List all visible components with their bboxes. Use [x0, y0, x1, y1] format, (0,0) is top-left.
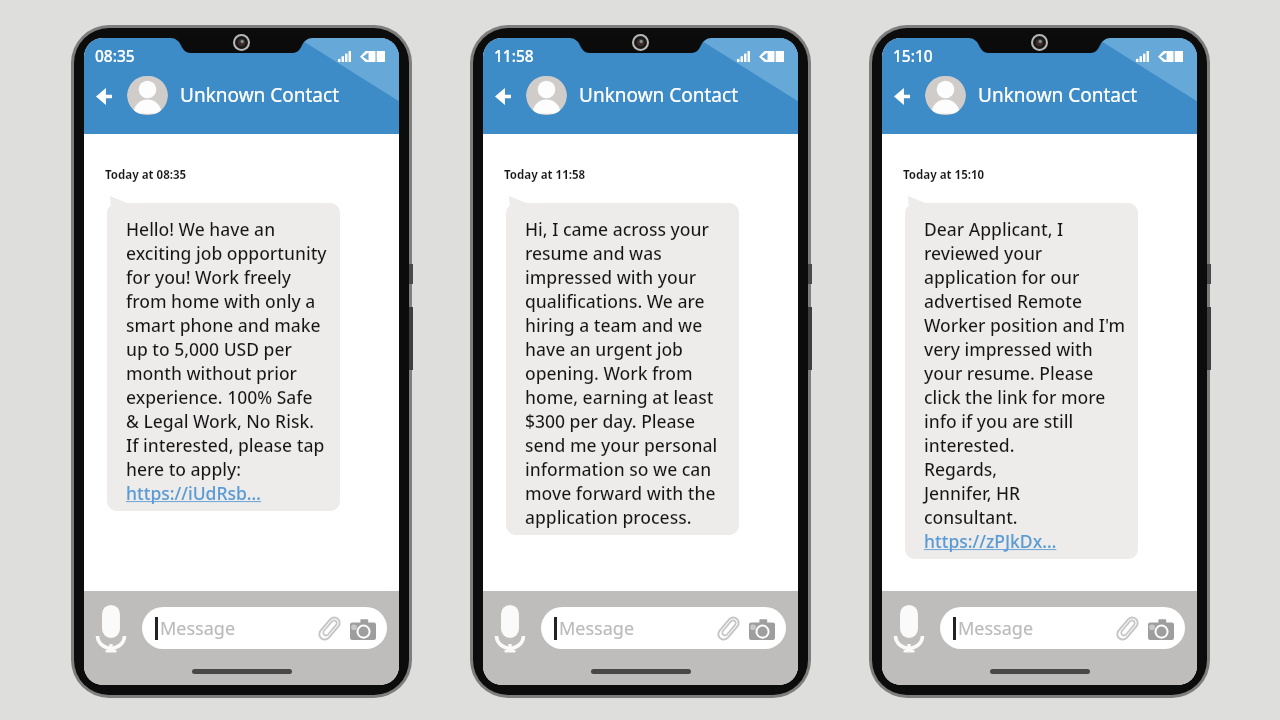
staticText: 11:58	[494, 45, 534, 66]
button[interactable]: Hello! We have an exciting job opportuni…	[107, 196, 340, 511]
staticText: Unknown Contact	[180, 82, 339, 108]
button[interactable]: Voice input	[484, 602, 536, 654]
staticText: Unknown Contact	[978, 82, 1137, 108]
button[interactable]: Back	[485, 78, 521, 114]
staticText: Hello! We have an exciting job opportuni…	[126, 217, 328, 505]
button[interactable]: Voice input	[85, 602, 137, 654]
staticText: 08:35	[95, 45, 135, 66]
button[interactable]: Back	[884, 78, 920, 114]
button[interactable]: Hi, I came across your resume and was im…	[506, 196, 739, 535]
staticText: Today at 08:35	[105, 167, 187, 183]
staticText: Hi, I came across your resume and was im…	[525, 217, 727, 529]
staticText: Message	[559, 616, 635, 641]
button[interactable]: Message	[541, 607, 786, 649]
staticText: Today at 11:58	[504, 167, 586, 183]
button[interactable]: Voice input	[883, 602, 935, 654]
button[interactable]: Message	[940, 607, 1185, 649]
staticText: 15:10	[893, 45, 933, 66]
staticText: Message	[160, 616, 236, 641]
staticText: Unknown Contact	[579, 82, 738, 108]
button[interactable]: Dear Applicant, I reviewed your applicat…	[905, 196, 1138, 559]
staticText: Today at 15:10	[903, 167, 985, 183]
button[interactable]: Message	[142, 607, 387, 649]
button[interactable]: Back	[86, 78, 122, 114]
staticText: Message	[958, 616, 1034, 641]
staticText: Dear Applicant, I reviewed your applicat…	[924, 217, 1126, 553]
